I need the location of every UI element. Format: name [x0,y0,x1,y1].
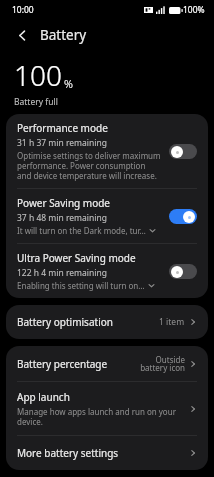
staticText: Manage how apps launch and run on your d… [17,406,183,427]
staticText: Outside battery icon [133,354,185,373]
button[interactable]: Toggle off [169,264,197,279]
button[interactable]: More battery settings [6,436,208,470]
button[interactable]: Toggle on [169,209,197,224]
button[interactable]: Battery optimisation [6,305,208,339]
staticText: More battery settings [17,446,189,460]
staticText: % [64,76,73,91]
staticText: 100% [183,4,205,16]
staticText: Power Saving mode [17,196,111,210]
staticText: Ultra Power Saving mode [17,251,136,265]
staticText: 31 h 37 min remaining [17,137,107,149]
button[interactable]: Ultra Power Saving mode [6,244,208,298]
button[interactable]: Back [11,24,33,46]
staticText: Enabling this setting will turn on… [17,280,145,291]
staticText: Battery [40,26,87,44]
staticText: 37 h 48 min remaining [17,212,107,224]
staticText: 100 [14,56,62,94]
staticText: 10:00 [12,4,34,16]
button[interactable]: App launch [6,382,208,435]
button[interactable]: Battery percentage [6,346,208,381]
staticText: Battery optimisation [17,315,159,329]
button[interactable]: Power Saving mode [6,189,208,243]
staticText: 122 h 4 min remaining [17,267,107,279]
staticText: It will turn on the Dark mode, tur… [17,225,146,236]
staticText: Performance mode [17,121,108,135]
staticText: Battery percentage [17,357,133,371]
staticText: Battery full [14,96,58,108]
button[interactable]: Performance mode [6,114,208,188]
staticText: App launch [17,390,70,404]
staticText: 1 item [159,316,185,328]
staticText: Optimise settings to deliver maximum per… [17,150,161,181]
button[interactable]: Toggle off [169,144,197,159]
